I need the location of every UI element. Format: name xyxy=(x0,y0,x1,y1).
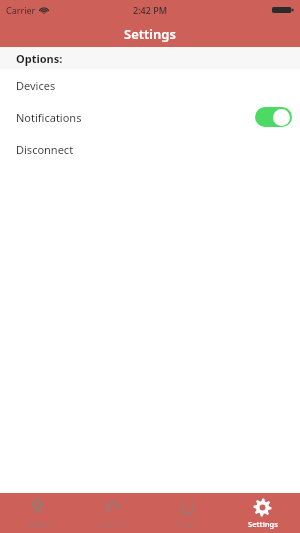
staticText: Devices xyxy=(24,519,51,529)
staticText: Settings xyxy=(124,25,176,43)
staticText: Disconnect xyxy=(16,142,74,157)
button[interactable]: Devices xyxy=(0,493,75,533)
staticText: Devices xyxy=(16,78,56,93)
staticText: 2:42 PM xyxy=(133,4,167,16)
button[interactable]: Disconnect xyxy=(0,133,300,165)
button[interactable]: Controls xyxy=(75,493,150,533)
staticText: Carrier xyxy=(6,4,36,16)
staticText: Notifications xyxy=(16,110,82,125)
button[interactable]: Notifications xyxy=(0,101,300,133)
staticText: Settings xyxy=(248,519,278,529)
button[interactable]: Devices xyxy=(0,69,300,101)
button[interactable]: Settings xyxy=(225,493,300,533)
staticText: Options: xyxy=(16,51,63,66)
staticText: Controls xyxy=(98,519,128,529)
staticText: Home xyxy=(177,519,199,529)
button[interactable]: Home xyxy=(150,493,225,533)
button[interactable]: Notifications toggle xyxy=(255,107,292,127)
